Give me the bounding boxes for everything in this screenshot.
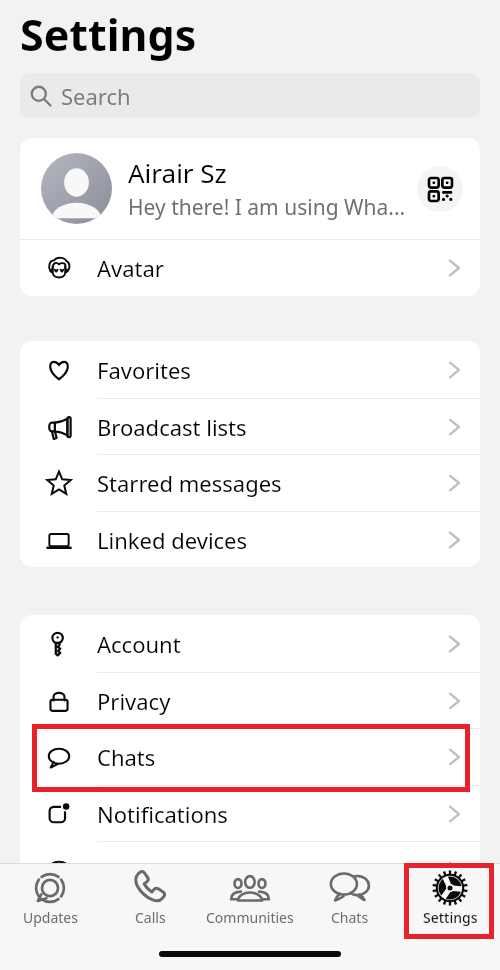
staticText: Airair Sz bbox=[128, 155, 227, 190]
button[interactable]: Linked devices bbox=[20, 511, 480, 567]
button[interactable]: Search bbox=[20, 73, 480, 118]
button[interactable]: Starred messages bbox=[20, 454, 480, 511]
button[interactable]: Notifications bbox=[20, 785, 480, 842]
button[interactable]: Avatar bbox=[20, 240, 480, 296]
staticText: Account bbox=[97, 629, 444, 659]
button[interactable]: Storage and data bbox=[20, 841, 480, 898]
button[interactable]: Privacy bbox=[20, 672, 480, 729]
button[interactable]: Account bbox=[20, 615, 480, 672]
staticText: Updates bbox=[23, 908, 78, 927]
staticText: Chats bbox=[97, 742, 444, 772]
button[interactable]: QR code bbox=[417, 166, 463, 212]
staticText: Broadcast lists bbox=[97, 412, 444, 442]
staticText: Settings bbox=[423, 908, 478, 927]
staticText: Search bbox=[61, 81, 131, 111]
button[interactable]: Updates bbox=[0, 868, 100, 927]
button[interactable]: Calls bbox=[100, 868, 200, 927]
staticText: Favorites bbox=[97, 355, 444, 385]
staticText: Communities bbox=[206, 908, 294, 927]
button[interactable]: Favorites bbox=[20, 341, 480, 398]
button[interactable]: Chats bbox=[20, 728, 480, 785]
staticText: Settings bbox=[20, 5, 197, 64]
button[interactable]: Broadcast lists bbox=[20, 398, 480, 455]
button[interactable]: Communities bbox=[200, 868, 300, 927]
staticText: Chats bbox=[331, 908, 369, 927]
staticText: Linked devices bbox=[97, 525, 444, 555]
staticText: Privacy bbox=[97, 686, 444, 716]
button[interactable]: Airair Sz bbox=[20, 138, 480, 239]
button[interactable]: Settings bbox=[400, 868, 500, 927]
staticText: Notifications bbox=[97, 799, 444, 829]
staticText: Avatar bbox=[97, 253, 444, 283]
staticText: Calls bbox=[135, 908, 166, 927]
staticText: Storage and data bbox=[97, 855, 444, 885]
staticText: Hey there! I am using Wha... bbox=[128, 193, 406, 222]
button[interactable]: Chats bbox=[300, 868, 400, 927]
staticText: Starred messages bbox=[97, 468, 444, 498]
